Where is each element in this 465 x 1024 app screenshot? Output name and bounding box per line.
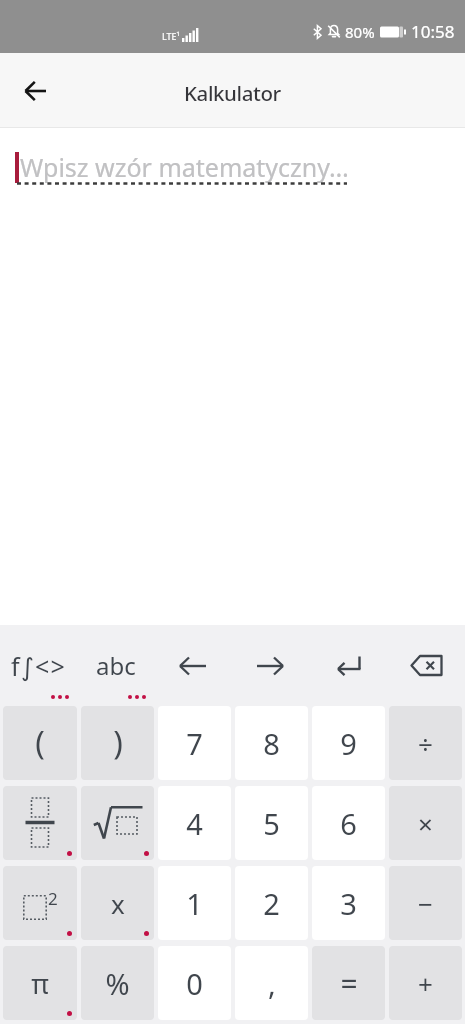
button[interactable]: 2: [3, 866, 77, 940]
staticText: ): [113, 721, 123, 765]
button[interactable]: [309, 625, 387, 706]
staticText: 2: [48, 887, 58, 910]
staticText: =: [340, 963, 358, 1004]
button[interactable]: 3: [312, 866, 385, 940]
button[interactable]: ×: [389, 786, 462, 860]
staticText: (: [35, 721, 45, 765]
button[interactable]: [387, 625, 465, 706]
staticText: Kalkulator: [184, 79, 281, 107]
staticText: 9: [340, 724, 357, 763]
staticText: 80%: [345, 22, 375, 42]
button[interactable]: π: [3, 946, 77, 1020]
staticText: 10:58: [411, 20, 455, 43]
staticText: 2: [263, 884, 280, 923]
staticText: 6: [340, 804, 357, 843]
staticText: Wpisz wzór matematyczny…: [20, 150, 349, 184]
staticText: 7: [186, 724, 203, 763]
button[interactable]: 1: [158, 866, 231, 940]
button[interactable]: +: [389, 946, 462, 1020]
staticText: abc: [96, 649, 136, 682]
staticText: 4: [186, 804, 203, 843]
staticText: 0: [186, 964, 203, 1003]
button[interactable]: abc: [77, 625, 154, 706]
staticText: ÷: [418, 726, 433, 761]
button[interactable]: %: [81, 946, 154, 1020]
button[interactable]: [154, 625, 231, 706]
staticText: 5: [263, 804, 280, 843]
button[interactable]: 5: [235, 786, 308, 860]
button[interactable]: [14, 69, 58, 113]
staticText: %: [105, 964, 130, 1003]
button[interactable]: ,: [235, 946, 308, 1020]
button[interactable]: 7: [158, 706, 231, 780]
button[interactable]: [231, 625, 309, 706]
button[interactable]: (: [3, 706, 77, 780]
staticText: ,: [268, 964, 276, 1003]
staticText: ×: [418, 806, 433, 841]
staticText: LTE¹: [162, 30, 180, 42]
staticText: 8: [263, 724, 280, 763]
button[interactable]: x: [81, 866, 154, 940]
button[interactable]: −: [389, 866, 462, 940]
button[interactable]: ): [81, 706, 154, 780]
staticText: +: [418, 966, 433, 1001]
button[interactable]: [3, 786, 77, 860]
button[interactable]: 4: [158, 786, 231, 860]
button[interactable]: 9: [312, 706, 385, 780]
button[interactable]: ÷: [389, 706, 462, 780]
button[interactable]: 6: [312, 786, 385, 860]
staticText: 1: [186, 884, 203, 923]
staticText: −: [418, 886, 433, 921]
button[interactable]: [81, 786, 154, 860]
staticText: x: [111, 886, 125, 921]
staticText: π: [31, 965, 49, 1002]
staticText: f∫<>: [11, 649, 67, 683]
button[interactable]: 0: [158, 946, 231, 1020]
button[interactable]: =: [312, 946, 385, 1020]
button[interactable]: f∫<>: [0, 625, 77, 706]
button[interactable]: 8: [235, 706, 308, 780]
staticText: 3: [340, 884, 357, 923]
button[interactable]: 2: [235, 866, 308, 940]
